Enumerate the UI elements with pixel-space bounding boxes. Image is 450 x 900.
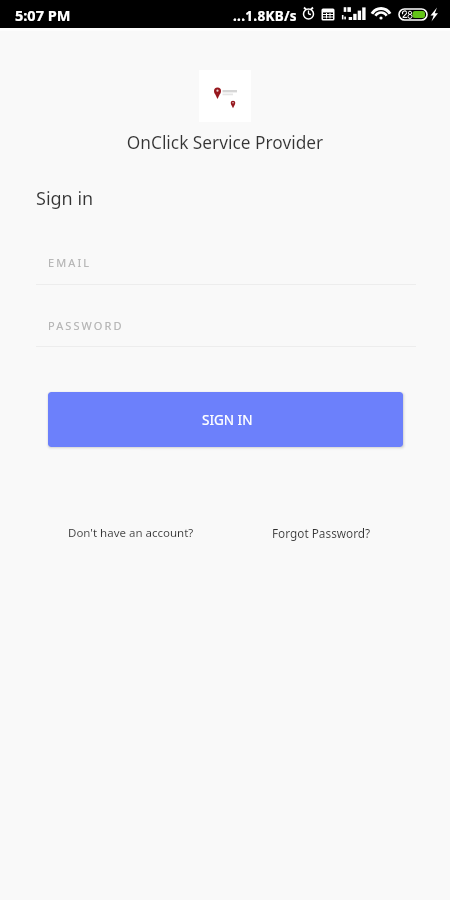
button[interactable]: Don't have an account? — [68, 525, 194, 541]
button[interactable]: SIGN IN — [48, 392, 403, 447]
staticText: EMAIL — [48, 255, 92, 270]
staticText: OnClick Service Provider — [0, 131, 450, 155]
button[interactable]: PASSWORD — [36, 304, 416, 344]
staticText: Sign in — [36, 186, 94, 211]
staticText: SIGN IN — [202, 411, 253, 429]
staticText: Forgot Password? — [272, 525, 371, 541]
button[interactable]: EMAIL — [36, 241, 416, 281]
other: Alarm, calendar, signal, wifi and batter… — [300, 5, 445, 23]
staticText: PASSWORD — [48, 318, 124, 333]
button[interactable]: Forgot Password? — [272, 525, 371, 541]
staticText: ...1.8KB/s — [233, 7, 297, 25]
staticText: 5:07 PM — [15, 5, 71, 25]
staticText: Don't have an account? — [68, 525, 194, 541]
other: OnClick Service Provider logo — [199, 70, 251, 122]
